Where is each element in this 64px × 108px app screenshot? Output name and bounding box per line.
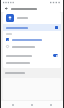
button[interactable]: Toggle (3, 52, 61, 59)
button[interactable] (3, 12, 61, 24)
button[interactable]: Home (6, 101, 20, 108)
button[interactable]: Back (4, 6, 9, 11)
button[interactable] (3, 24, 61, 31)
button[interactable]: Profile (44, 101, 58, 108)
button[interactable] (3, 36, 61, 43)
button[interactable] (3, 43, 61, 50)
button[interactable] (3, 59, 61, 66)
button[interactable]: Search (25, 101, 39, 108)
button[interactable]: Toggle (53, 54, 58, 57)
